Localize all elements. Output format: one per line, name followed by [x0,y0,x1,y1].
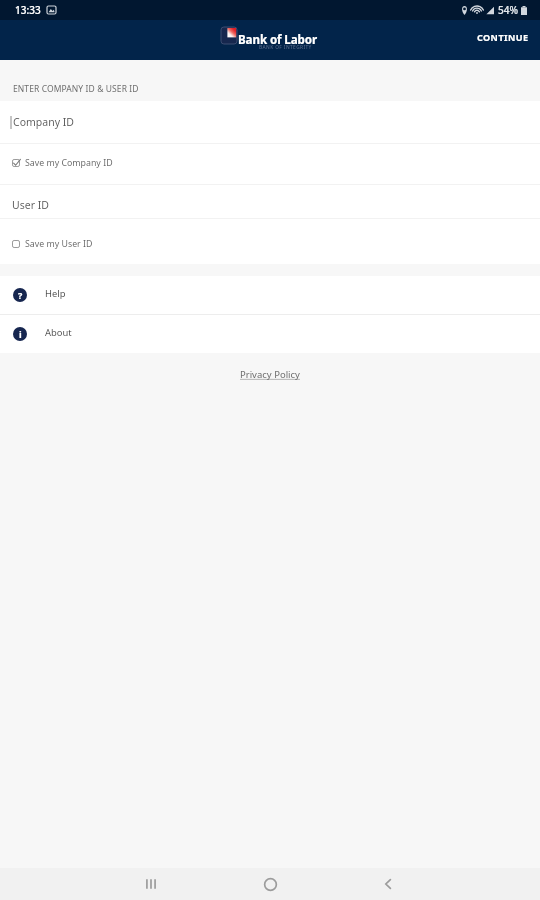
button[interactable]: Back [368,868,408,900]
staticText: ENTER COMPANY ID & USER ID [13,83,139,95]
button[interactable]: ? [0,276,540,314]
staticText: Save my Company ID [25,157,113,169]
button[interactable]: Save my Company ID [0,144,540,184]
staticText: Bank of Labor [238,32,318,48]
button[interactable]: Privacy Policy [235,363,305,386]
button[interactable]: CONTINUE [463,26,540,54]
staticText: User ID [12,198,49,212]
staticText: ? [18,289,23,301]
button[interactable]: Home [250,868,290,900]
staticText: 13:33 [15,3,41,17]
staticText: About [45,326,72,339]
staticText: Save my User ID [25,238,93,250]
staticText: 54% [498,3,518,17]
staticText: Company ID [13,115,74,129]
button[interactable]: i [0,315,540,353]
staticText: i [19,328,22,340]
staticText: BANK OF INTEGRITY [259,44,312,51]
button[interactable]: Save my User ID [0,219,540,264]
staticText: CONTINUE [477,31,529,43]
button[interactable]: Recents [131,868,171,900]
staticText: Help [45,287,66,300]
